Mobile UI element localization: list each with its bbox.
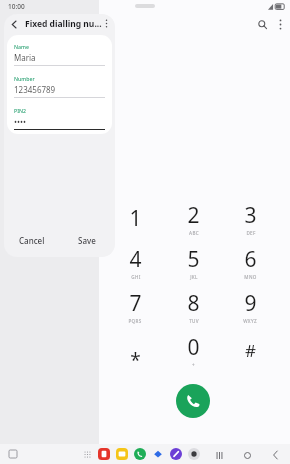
staticText: 9 <box>244 289 257 318</box>
staticText: DEF <box>246 230 256 236</box>
staticText: Name <box>14 43 29 50</box>
button[interactable]: Back <box>269 449 281 461</box>
button[interactable]: # <box>224 331 276 369</box>
staticText: 8 <box>187 289 200 318</box>
button[interactable]: Save <box>59 223 115 257</box>
staticText: 5 <box>187 245 200 274</box>
staticText: 10:00 <box>8 2 25 11</box>
button[interactable]: 9 <box>224 287 276 325</box>
button[interactable]: App 3 <box>133 447 147 461</box>
staticText: 123456789 <box>14 84 56 95</box>
staticText: Save <box>78 235 96 246</box>
button[interactable]: More options <box>270 14 290 34</box>
staticText: ABC <box>189 230 199 236</box>
button[interactable]: 7 <box>109 287 161 325</box>
staticText: PIN2 <box>14 107 26 114</box>
button[interactable]: 5 <box>167 243 219 281</box>
button[interactable]: App 4 <box>151 447 165 461</box>
button[interactable]: Recent apps panel <box>8 449 18 459</box>
staticText: MNO <box>244 274 257 280</box>
staticText: + <box>192 362 195 368</box>
staticText: 0 <box>187 333 200 362</box>
staticText: 7 <box>129 289 142 318</box>
button[interactable]: Cancel <box>4 223 59 257</box>
staticText: # <box>245 339 256 362</box>
button[interactable]: Recents <box>213 449 225 461</box>
staticText: Cancel <box>19 235 45 246</box>
staticText: •••• <box>14 116 27 127</box>
staticText: JKL <box>190 274 198 280</box>
staticText: TUV <box>189 318 199 324</box>
staticText: Maria <box>14 52 36 63</box>
button[interactable]: App 2 <box>115 447 129 461</box>
button[interactable]: 0 <box>167 331 219 369</box>
button[interactable]: More options <box>99 16 114 31</box>
staticText: WXYZ <box>243 318 257 324</box>
button[interactable]: 6 <box>224 243 276 281</box>
button[interactable]: Call <box>176 384 210 418</box>
staticText: 4 <box>129 245 142 274</box>
staticText: ⁎ <box>130 337 141 363</box>
staticText: 2 <box>187 201 200 230</box>
button[interactable]: 3 <box>224 199 276 237</box>
button[interactable]: 1 <box>109 199 161 237</box>
button[interactable]: 2 <box>167 199 219 237</box>
button[interactable]: 8 <box>167 287 219 325</box>
staticText: 6 <box>244 245 257 274</box>
staticText: 3 <box>244 201 257 230</box>
button[interactable]: ⁎ <box>109 331 161 369</box>
staticText: GHI <box>131 274 141 280</box>
button[interactable]: Navigate up <box>6 16 23 33</box>
button[interactable]: App 5 <box>169 447 183 461</box>
staticText: Number <box>14 75 35 82</box>
button[interactable]: Home <box>241 449 253 461</box>
staticText: PQRS <box>128 318 142 324</box>
staticText: 1 <box>129 204 142 233</box>
button[interactable]: App 1 <box>97 447 111 461</box>
button[interactable]: 4 <box>109 243 161 281</box>
staticText: Fixed dialling nu... <box>25 18 102 30</box>
button[interactable]: App 6 <box>187 447 201 461</box>
button[interactable]: Search <box>252 14 272 34</box>
button[interactable]: Apps <box>82 449 92 459</box>
